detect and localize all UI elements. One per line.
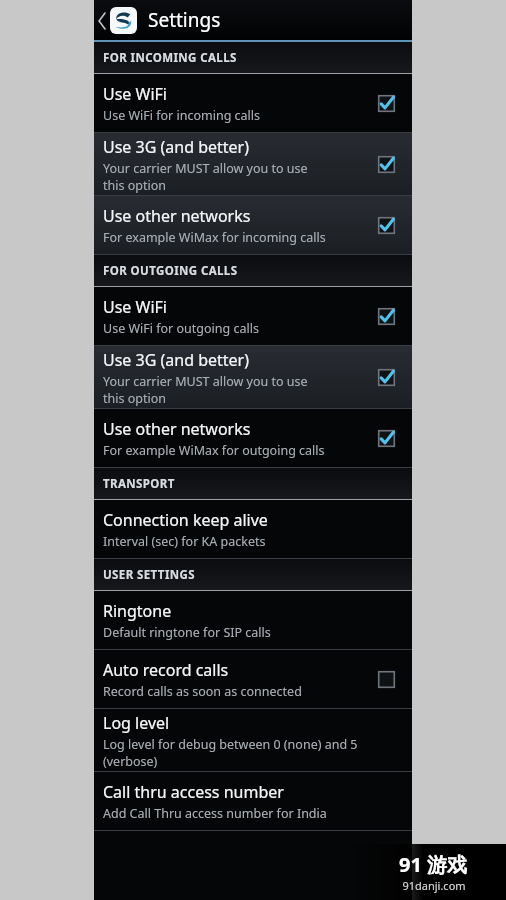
staticText: Ringtone	[103, 600, 172, 622]
staticText: Call thru access number	[103, 781, 284, 803]
button[interactable]: Log level	[94, 709, 412, 771]
button[interactable]: Use WiFi	[94, 74, 412, 132]
button[interactable]: Use 3G (and better)	[94, 133, 412, 195]
staticText: Interval (sec) for KA packets	[103, 533, 266, 550]
staticText: TRANSPORT	[103, 476, 175, 492]
button[interactable]: Use other networks	[377, 216, 396, 235]
button[interactable]: Ringtone	[94, 591, 412, 649]
staticText: Record calls as soon as connected	[103, 683, 302, 700]
staticText: Auto record calls	[103, 659, 229, 681]
button[interactable]: Use 3G (and better)	[94, 346, 412, 408]
staticText: USER SETTINGS	[103, 567, 195, 583]
button[interactable]: Use other networks	[94, 196, 412, 254]
button[interactable]: Auto record calls	[94, 650, 412, 708]
staticText: Use WiFi for incoming calls	[103, 107, 261, 124]
staticText: Your carrier MUST allow you to use this …	[103, 373, 308, 406]
button[interactable]: Auto record calls	[377, 670, 396, 689]
staticText: Use other networks	[103, 205, 251, 227]
button[interactable]: Call thru access number	[94, 772, 412, 830]
button[interactable]: Use WiFi	[377, 307, 396, 326]
staticText: Use WiFi for outgoing calls	[103, 320, 259, 337]
staticText: Settings	[148, 7, 221, 33]
staticText: Log level for debug between 0 (none) and…	[103, 736, 358, 769]
staticText: Your carrier MUST allow you to use this …	[103, 160, 308, 193]
button[interactable]: Use other networks	[94, 409, 412, 467]
staticText: Add Call Thru access number for India	[103, 805, 327, 822]
staticText: FOR OUTGOING CALLS	[103, 263, 238, 279]
staticText: Default ringtone for SIP calls	[103, 624, 271, 641]
staticText: 91 游戏	[399, 851, 468, 878]
button[interactable]: Use other networks	[377, 429, 396, 448]
button[interactable]: Use 3G (and better)	[377, 368, 396, 387]
staticText: Use 3G (and better)	[103, 136, 250, 158]
button[interactable]: Back	[94, 7, 139, 34]
staticText: Use WiFi	[103, 296, 167, 318]
staticText: For example WiMax for incoming calls	[103, 229, 326, 246]
button[interactable]: Use 3G (and better)	[377, 155, 396, 174]
staticText: FOR INCOMING CALLS	[103, 50, 237, 66]
staticText: Use 3G (and better)	[103, 349, 250, 371]
staticText: Use WiFi	[103, 83, 167, 105]
staticText: Use other networks	[103, 418, 251, 440]
button[interactable]: Connection keep alive	[94, 500, 412, 558]
staticText: Log level	[103, 712, 170, 734]
staticText: For example WiMax for outgoing calls	[103, 442, 325, 459]
button[interactable]: Use WiFi	[377, 94, 396, 113]
button[interactable]: Use WiFi	[94, 287, 412, 345]
staticText: 91danji.com	[402, 878, 466, 893]
staticText: Connection keep alive	[103, 509, 268, 531]
